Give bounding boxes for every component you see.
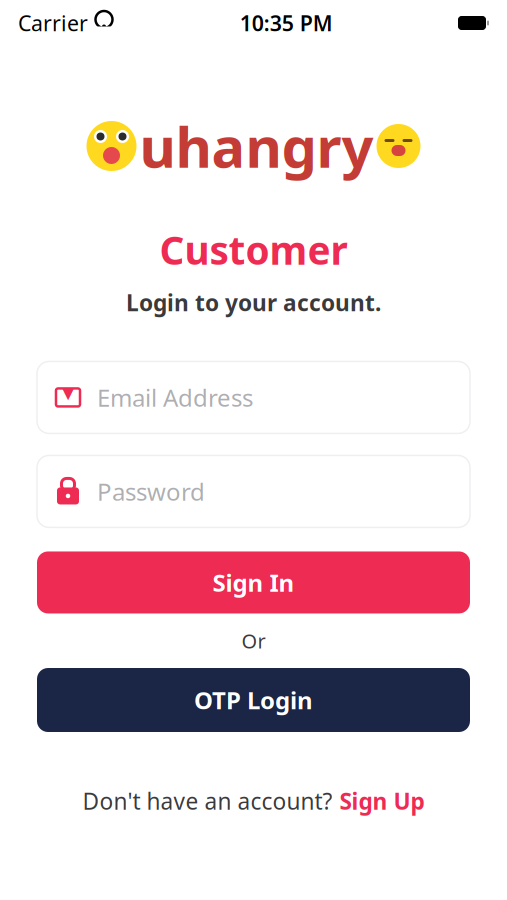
staticText: Or (241, 627, 265, 654)
staticText: ▼ (62, 385, 73, 402)
button[interactable]: Don't have an account? (72, 780, 434, 822)
staticText: Login to your account. (126, 287, 381, 317)
staticText: 10:35 PM (240, 9, 333, 37)
staticText: Sign In (212, 566, 294, 598)
staticText: Customer (159, 224, 347, 275)
staticText: Carrier (18, 9, 88, 37)
staticText: Sign Up (339, 786, 424, 816)
staticText: OTP Login (194, 684, 313, 716)
staticText: Password (97, 475, 205, 507)
staticText: Don't have an account? (82, 786, 332, 816)
button[interactable]: Sign In (37, 551, 470, 613)
staticText: Email Address (97, 381, 253, 413)
button[interactable]: OTP Login (37, 668, 470, 732)
staticText: uhangry (139, 109, 373, 183)
